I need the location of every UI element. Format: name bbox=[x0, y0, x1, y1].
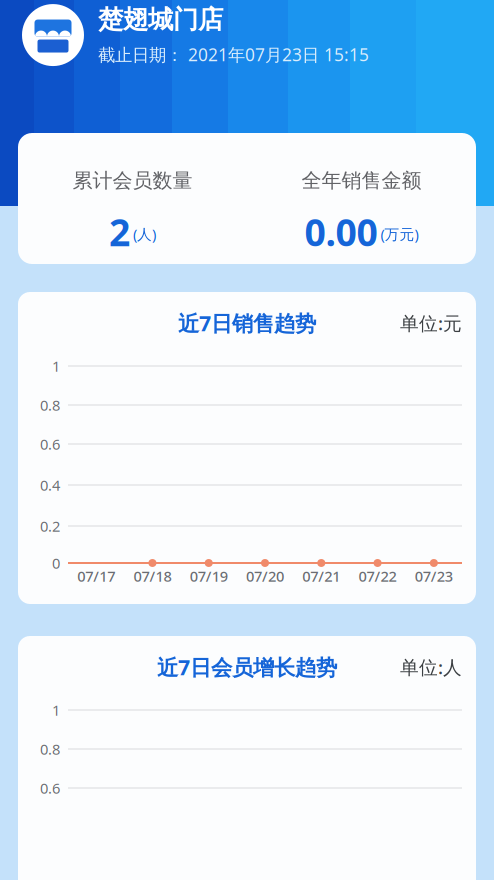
staticText: 2 bbox=[109, 207, 130, 257]
staticText: 0 bbox=[52, 553, 60, 573]
staticText: 1 bbox=[52, 700, 60, 720]
staticText: 0.00 bbox=[304, 207, 377, 257]
staticText: 截止日期： 2021年07月23日 15:15 bbox=[98, 43, 369, 66]
staticText: 近7日会员增长趋势 bbox=[157, 653, 337, 681]
staticText: 07/20 bbox=[246, 566, 284, 586]
staticText: 0.8 bbox=[40, 395, 60, 415]
staticText: 单位:元 bbox=[400, 311, 462, 335]
staticText: (万元) bbox=[380, 224, 418, 244]
staticText: 07/21 bbox=[302, 566, 340, 586]
staticText: 0.4 bbox=[40, 475, 60, 495]
staticText: 07/23 bbox=[415, 566, 453, 586]
staticText: 单位:人 bbox=[400, 655, 462, 679]
staticText: ‹ bbox=[30, 0, 42, 6]
staticText: 07/17 bbox=[77, 566, 115, 586]
staticText: 累计会员数量 bbox=[72, 168, 192, 193]
staticText: 0.2 bbox=[40, 516, 60, 536]
staticText: 0.6 bbox=[40, 778, 60, 798]
staticText: 近7日销售趋势 bbox=[178, 309, 316, 337]
staticText: 楚翅城门店 bbox=[98, 4, 223, 35]
staticText: 全年销售金额 bbox=[301, 168, 421, 193]
staticText: 07/19 bbox=[190, 566, 228, 586]
staticText: 07/22 bbox=[359, 566, 397, 586]
staticText: (人) bbox=[133, 224, 156, 244]
staticText: 1 bbox=[52, 356, 60, 376]
staticText: 07/18 bbox=[133, 566, 171, 586]
staticText: 0.8 bbox=[40, 739, 60, 759]
staticText: 0.6 bbox=[40, 434, 60, 454]
